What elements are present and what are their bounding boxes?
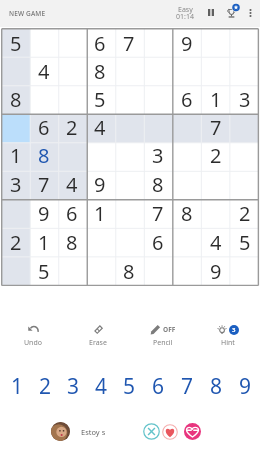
button[interactable] <box>230 57 259 85</box>
button[interactable]: OFF <box>143 323 183 349</box>
button[interactable] <box>58 29 86 57</box>
button[interactable]: 2 <box>2 228 30 257</box>
button[interactable]: 2 <box>31 372 59 398</box>
button[interactable]: 8 <box>172 199 201 228</box>
button[interactable]: 9 <box>30 199 58 228</box>
button[interactable]: 9 <box>231 372 260 398</box>
button[interactable]: 5 <box>115 372 144 398</box>
button[interactable]: 8 <box>114 257 143 286</box>
button[interactable]: 9 <box>172 29 201 57</box>
button[interactable]: 8 <box>143 170 172 199</box>
button[interactable]: 4 <box>201 228 230 257</box>
button[interactable]: Easy <box>172 2 198 25</box>
button[interactable]: 5 <box>2 29 30 57</box>
button[interactable] <box>30 29 58 57</box>
button[interactable] <box>143 113 172 141</box>
button[interactable]: 6 <box>58 199 86 228</box>
button[interactable] <box>172 228 201 257</box>
button[interactable] <box>201 170 230 199</box>
button[interactable] <box>86 141 114 170</box>
button[interactable]: 9 <box>86 170 114 199</box>
button[interactable]: Dismiss <box>143 423 160 440</box>
button[interactable] <box>230 257 259 286</box>
button[interactable]: 1 <box>30 228 58 257</box>
button[interactable]: Erase <box>82 323 114 349</box>
button[interactable]: 6 <box>86 29 114 57</box>
button[interactable]: Pause <box>201 2 221 22</box>
button[interactable]: 3 <box>143 141 172 170</box>
button[interactable] <box>30 85 58 113</box>
button[interactable]: 8 <box>202 372 231 398</box>
button[interactable]: 5 <box>30 257 58 286</box>
button[interactable] <box>172 113 201 141</box>
button[interactable] <box>172 170 201 199</box>
button[interactable]: 8 <box>30 141 58 170</box>
button[interactable] <box>172 57 201 85</box>
button[interactable]: 7 <box>30 170 58 199</box>
button[interactable]: 4 <box>30 57 58 85</box>
button[interactable]: 7 <box>143 199 172 228</box>
button[interactable] <box>201 57 230 85</box>
button[interactable]: 3 <box>210 323 246 349</box>
button[interactable]: 1 <box>201 85 230 113</box>
button[interactable]: 4 <box>87 372 115 398</box>
button[interactable] <box>201 199 230 228</box>
button[interactable] <box>2 257 30 286</box>
button[interactable]: NEW GAME <box>4 4 51 23</box>
button[interactable]: Like <box>162 424 178 440</box>
button[interactable]: Undo <box>17 323 49 349</box>
button[interactable]: 3 <box>59 372 87 398</box>
button[interactable]: 5 <box>86 85 114 113</box>
button[interactable]: 7 <box>173 372 202 398</box>
button[interactable] <box>230 170 259 199</box>
button[interactable]: 7 <box>201 113 230 141</box>
button[interactable]: 5 <box>230 228 259 257</box>
button[interactable]: Estoy s <box>0 405 260 460</box>
button[interactable] <box>58 257 86 286</box>
button[interactable] <box>143 85 172 113</box>
button[interactable]: Trophies <box>220 0 242 22</box>
button[interactable] <box>58 85 86 113</box>
button[interactable]: 6 <box>172 85 201 113</box>
button[interactable] <box>114 57 143 85</box>
button[interactable]: 1 <box>2 141 30 170</box>
button[interactable] <box>114 85 143 113</box>
button[interactable] <box>86 228 114 257</box>
button[interactable] <box>2 113 30 141</box>
button[interactable] <box>143 29 172 57</box>
button[interactable]: Badoo <box>184 423 201 440</box>
button[interactable]: 1 <box>3 372 31 398</box>
button[interactable]: 4 <box>86 113 114 141</box>
button[interactable] <box>114 228 143 257</box>
button[interactable]: 3 <box>230 85 259 113</box>
button[interactable]: 7 <box>114 29 143 57</box>
button[interactable] <box>58 57 86 85</box>
button[interactable]: 2 <box>230 199 259 228</box>
button[interactable]: 6 <box>144 372 173 398</box>
button[interactable]: 6 <box>30 113 58 141</box>
button[interactable] <box>86 257 114 286</box>
button[interactable]: 4 <box>58 170 86 199</box>
button[interactable]: 8 <box>86 57 114 85</box>
button[interactable]: 2 <box>201 141 230 170</box>
button[interactable] <box>172 141 201 170</box>
button[interactable]: 8 <box>2 85 30 113</box>
button[interactable] <box>2 57 30 85</box>
button[interactable]: 6 <box>143 228 172 257</box>
button[interactable]: 8 <box>58 228 86 257</box>
button[interactable] <box>114 170 143 199</box>
button[interactable] <box>114 113 143 141</box>
button[interactable] <box>143 57 172 85</box>
button[interactable] <box>114 199 143 228</box>
button[interactable] <box>172 257 201 286</box>
button[interactable] <box>230 141 259 170</box>
button[interactable] <box>230 113 259 141</box>
button[interactable]: More options <box>241 3 260 22</box>
button[interactable] <box>230 29 259 57</box>
button[interactable]: 3 <box>2 170 30 199</box>
button[interactable]: 2 <box>58 113 86 141</box>
button[interactable] <box>114 141 143 170</box>
button[interactable] <box>2 199 30 228</box>
button[interactable] <box>143 257 172 286</box>
